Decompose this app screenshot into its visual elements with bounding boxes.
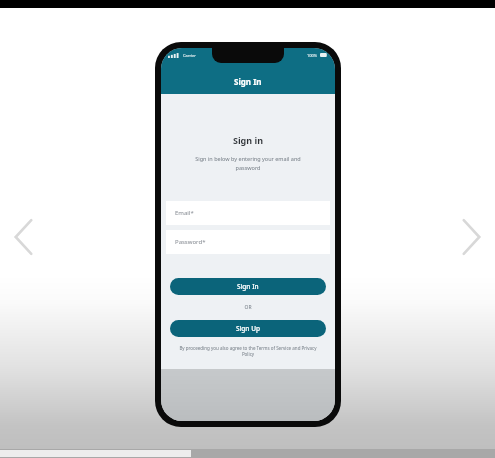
- staticText: Email*: [175, 209, 194, 217]
- staticText: Sign in: [161, 134, 335, 146]
- button[interactable]: Next: [449, 207, 493, 267]
- button[interactable]: Password*: [166, 230, 330, 254]
- staticText: Sign in below by entering your email and…: [185, 155, 311, 172]
- staticText: Password*: [175, 238, 206, 246]
- button[interactable]: Previous: [2, 207, 46, 267]
- staticText: Sign Up: [236, 324, 260, 333]
- button[interactable]: By proceeding you also agree to the Term…: [177, 345, 319, 358]
- button[interactable]: Sign Up: [170, 320, 326, 337]
- button[interactable]: Email*: [166, 201, 330, 225]
- staticText: Carrier: [183, 53, 197, 58]
- staticText: 100%: [307, 53, 318, 58]
- staticText: OR: [161, 304, 335, 311]
- staticText: Sign In: [237, 282, 259, 291]
- staticText: Sign In: [234, 76, 262, 87]
- button[interactable]: Sign In: [170, 278, 326, 295]
